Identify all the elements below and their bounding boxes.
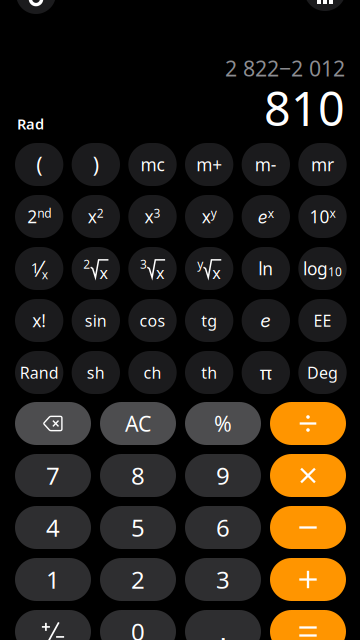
staticText: (	[36, 150, 42, 179]
button[interactable]: sin	[72, 299, 120, 342]
button[interactable]: History	[304, 0, 346, 11]
button[interactable]: x cubed	[128, 195, 177, 238]
staticText: .	[220, 616, 226, 640]
staticText: x	[156, 262, 164, 283]
button[interactable]: ten to the x	[298, 195, 347, 238]
button[interactable]: Close parenthesis	[72, 143, 120, 186]
button[interactable]: 5	[100, 506, 176, 549]
button[interactable]: e	[242, 299, 290, 342]
button[interactable]: Second functions	[15, 195, 63, 238]
button[interactable]: 2	[100, 558, 176, 601]
button[interactable]: Rand	[15, 351, 63, 394]
staticText: 2	[83, 256, 90, 272]
button[interactable]: sh	[72, 351, 120, 394]
button[interactable]: EE	[298, 299, 347, 342]
staticText: 2 822−2 012	[225, 54, 345, 82]
staticText: 3	[216, 564, 230, 595]
staticText: e	[260, 309, 271, 332]
button[interactable]: mr	[298, 143, 347, 186]
button[interactable]: e to the x	[242, 195, 290, 238]
button[interactable]: one over x	[15, 247, 63, 290]
staticText: Rand	[20, 362, 59, 383]
button[interactable]: Delete	[15, 402, 91, 445]
staticText: x	[99, 262, 107, 283]
button[interactable]: 3 root of x	[128, 247, 177, 290]
staticText: m+	[196, 153, 222, 176]
staticText: π	[260, 360, 272, 385]
staticText: ch	[143, 362, 161, 383]
staticText: sin	[85, 310, 107, 331]
staticText: )	[93, 150, 99, 179]
button[interactable]: 7	[15, 454, 91, 497]
staticText: cos	[139, 310, 165, 331]
button[interactable]: Scientific mode	[16, 0, 56, 14]
staticText: 5	[131, 512, 145, 543]
staticText: x2	[88, 205, 104, 228]
button[interactable]: log10	[298, 247, 347, 290]
staticText: 9	[216, 460, 230, 491]
staticText: x!	[32, 309, 46, 332]
button[interactable]: 4	[15, 506, 91, 549]
button[interactable]: y root of x	[185, 247, 233, 290]
staticText: th	[201, 362, 217, 383]
button[interactable]: 1	[15, 558, 91, 601]
staticText: ex	[258, 205, 274, 227]
staticText: log10	[303, 257, 342, 280]
staticText: 7	[46, 460, 60, 491]
staticText: %	[214, 409, 232, 438]
button[interactable]: m+	[185, 143, 233, 186]
staticText: tg	[201, 310, 217, 331]
staticText: 1	[46, 564, 60, 595]
staticText: 6	[216, 512, 230, 543]
button[interactable]: x squared	[72, 195, 120, 238]
button[interactable]: ln	[242, 247, 290, 290]
button[interactable]: 8	[100, 454, 176, 497]
staticText: 3	[140, 256, 147, 272]
button[interactable]: ch	[128, 351, 177, 394]
staticText: 2nd	[27, 205, 51, 228]
button[interactable]: Decimal point	[185, 610, 261, 640]
button[interactable]: tg	[185, 299, 233, 342]
button[interactable]: Open parenthesis	[15, 143, 63, 186]
staticText: 810	[264, 77, 345, 139]
staticText: mc	[140, 153, 164, 176]
button[interactable]: Divide	[270, 402, 346, 445]
button[interactable]: th	[185, 351, 233, 394]
button[interactable]: x to the y	[185, 195, 233, 238]
button[interactable]: 6	[185, 506, 261, 549]
button[interactable]: Minus	[270, 506, 346, 549]
button[interactable]: Plus minus	[15, 610, 91, 640]
button[interactable]: Equals	[270, 610, 346, 640]
button[interactable]: 2 root of x	[72, 247, 120, 290]
staticText: 1⁄x	[31, 254, 48, 283]
staticText: AC	[125, 409, 151, 438]
staticText: y	[197, 256, 203, 272]
button[interactable]: 3	[185, 558, 261, 601]
staticText: Deg	[307, 362, 338, 383]
staticText: Rad	[17, 114, 44, 133]
staticText: x3	[144, 205, 160, 228]
staticText: 8	[131, 460, 145, 491]
button[interactable]: cos	[128, 299, 177, 342]
staticText: EE	[313, 310, 331, 331]
staticText: xy	[202, 205, 217, 228]
button[interactable]: Multiply	[270, 454, 346, 497]
button[interactable]: Plus	[270, 558, 346, 601]
button[interactable]: All clear	[100, 402, 176, 445]
staticText: x	[212, 262, 220, 283]
staticText: ln	[258, 257, 273, 280]
button[interactable]: m-	[242, 143, 290, 186]
staticText: 10x	[309, 205, 335, 228]
button[interactable]: Percent	[185, 402, 261, 445]
staticText: 2	[131, 564, 145, 595]
button[interactable]: 0	[100, 610, 176, 640]
button[interactable]: pi	[242, 351, 290, 394]
staticText: sh	[87, 362, 105, 383]
staticText: 0	[131, 616, 145, 640]
staticText: 4	[46, 512, 60, 543]
button[interactable]: mc	[128, 143, 177, 186]
staticText: mr	[311, 153, 334, 176]
button[interactable]: Degrees	[298, 351, 347, 394]
button[interactable]: x factorial	[15, 299, 63, 342]
button[interactable]: 9	[185, 454, 261, 497]
